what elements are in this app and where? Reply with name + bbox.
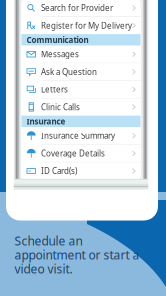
staticText: Clinic Calls	[41, 102, 80, 112]
staticText: Insurance	[26, 116, 65, 127]
staticText: Search for Provider	[41, 3, 113, 13]
button[interactable]: Search for Provider	[21, 0, 140, 16]
staticText: Messages	[41, 49, 79, 59]
button[interactable]: Letters	[21, 81, 140, 98]
button[interactable]: ID Card(s)	[21, 162, 140, 179]
staticText: video visit.	[14, 261, 72, 277]
staticText: appointment or start a	[14, 247, 139, 263]
staticText: Insurance Summary	[41, 130, 115, 141]
button[interactable]: Register for My Delivery	[21, 17, 140, 34]
staticText: Register for My Delivery	[41, 20, 132, 31]
staticText: Letters	[41, 84, 68, 95]
button[interactable]: Messages	[21, 46, 140, 63]
staticText: ID Card(s)	[41, 166, 77, 176]
button[interactable]: Ask a Question	[21, 63, 140, 80]
staticText: Communication	[26, 35, 88, 45]
button[interactable]: Clinic Calls	[21, 98, 140, 116]
button[interactable]: Insurance Summary	[21, 127, 140, 144]
staticText: Schedule an	[14, 233, 82, 249]
staticText: Ask a Question	[41, 66, 97, 77]
button[interactable]: Coverage Details	[21, 145, 140, 162]
staticText: Coverage Details	[41, 148, 105, 159]
